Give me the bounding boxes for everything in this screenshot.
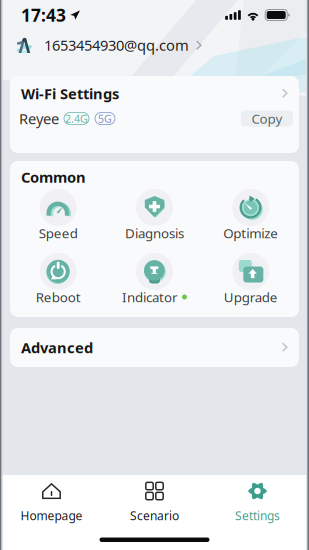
button[interactable]: Optimize: [203, 189, 299, 253]
button[interactable]: Upgrade: [203, 253, 299, 317]
staticText: Homepage: [20, 507, 82, 523]
button[interactable]: Scenario: [103, 481, 206, 523]
button[interactable]: Copy: [241, 110, 293, 126]
button[interactable]: Indicator: [106, 253, 203, 317]
staticText: Diagnosis: [125, 224, 184, 242]
staticText: Scenario: [130, 507, 179, 523]
staticText: Wi-Fi Settings: [21, 84, 119, 103]
button[interactable]: Homepage: [0, 481, 103, 523]
staticText: 2.4G: [65, 111, 88, 126]
staticText: Common: [21, 167, 86, 187]
button[interactable]: Diagnosis: [106, 189, 203, 253]
button[interactable]: Reboot: [10, 253, 106, 317]
staticText: Upgrade: [224, 288, 278, 306]
staticText: Indicator: [122, 288, 178, 306]
staticText: Reboot: [36, 288, 81, 306]
staticText: 1653454930@qq.com: [44, 35, 189, 55]
staticText: Copy: [251, 110, 282, 127]
staticText: Optimize: [223, 224, 278, 242]
staticText: Advanced: [21, 338, 93, 357]
button[interactable]: Settings: [206, 481, 309, 523]
staticText: Reyee: [19, 109, 59, 128]
staticText: 5G: [98, 111, 112, 126]
button[interactable]: Speed: [10, 189, 106, 253]
staticText: 17:43: [21, 3, 66, 26]
button[interactable]: 1653454930@qq.com: [0, 30, 309, 60]
staticText: Settings: [235, 507, 280, 523]
button[interactable]: Wi-Fi Settings: [10, 76, 299, 108]
button[interactable]: Advanced: [10, 328, 299, 367]
staticText: Speed: [39, 224, 78, 242]
